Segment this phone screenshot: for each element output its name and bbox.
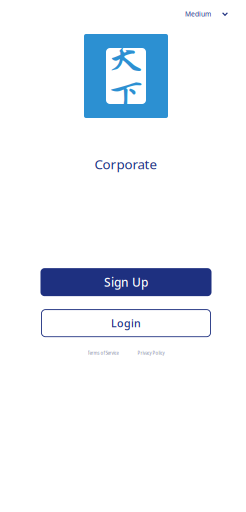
staticText: 下 <box>107 75 145 118</box>
staticText: Privacy Policy <box>137 349 164 356</box>
staticText: Login <box>111 316 141 330</box>
staticText: Sign Up <box>104 274 148 290</box>
button[interactable]: Medium <box>185 1 246 27</box>
button[interactable]: Login <box>41 309 211 337</box>
staticText: Terms of Service <box>87 349 118 356</box>
button[interactable]: Privacy Policy <box>137 349 164 356</box>
staticText: 天 <box>107 34 145 77</box>
button[interactable]: Terms of Service <box>87 349 118 356</box>
staticText: Corporate <box>94 155 157 173</box>
staticText: Medium <box>185 9 211 19</box>
button[interactable]: Sign Up <box>40 268 211 296</box>
